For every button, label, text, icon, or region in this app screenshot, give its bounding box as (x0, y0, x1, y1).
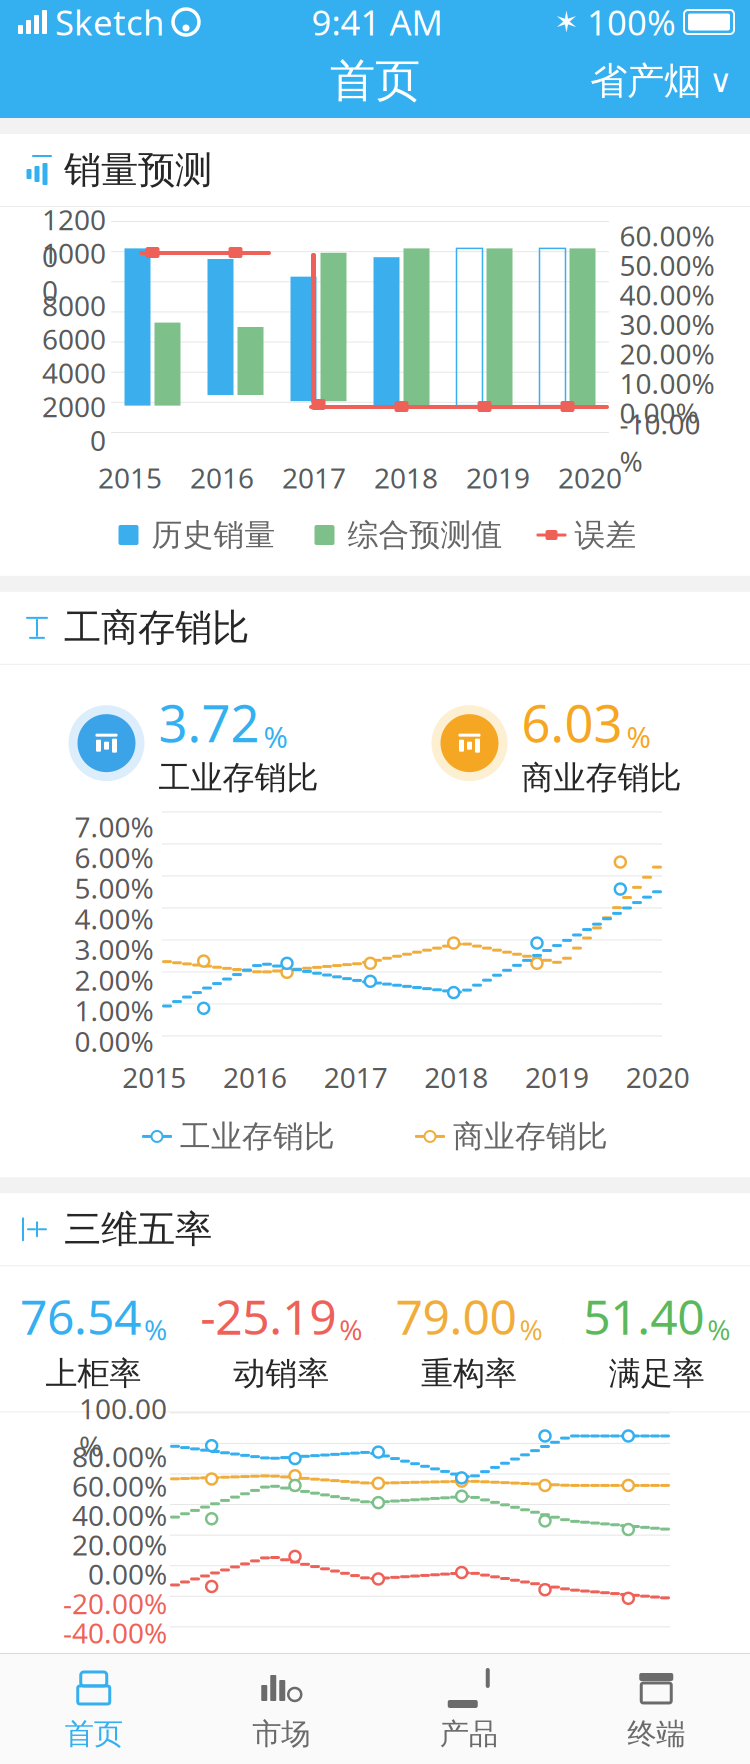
button[interactable]: 省产烟 (576, 50, 750, 112)
staticText: 2018 (432, 1649, 496, 1686)
staticText: 50.00% (619, 247, 714, 284)
staticText: 产品 (440, 1716, 498, 1752)
staticText: 30.00% (619, 306, 714, 343)
staticText: -25.19 (200, 1284, 336, 1348)
staticText: ∨ (709, 63, 732, 99)
staticText: 20.00% (72, 1526, 167, 1563)
staticText: 销量预测 (64, 147, 212, 193)
staticText: 100% (587, 0, 676, 45)
staticText: 5.00% (74, 869, 153, 907)
staticText: 历史销量 (151, 516, 275, 554)
staticText: 工商存销比 (64, 605, 249, 651)
button[interactable]: 终端 (562, 1654, 750, 1764)
staticText: 2019 (525, 1058, 589, 1096)
staticText: 10.00% (619, 365, 714, 402)
staticText: 动销率 (268, 1706, 361, 1744)
staticText: % (339, 1311, 362, 1348)
staticText: 2017 (324, 1058, 388, 1096)
staticText: 2019 (466, 459, 530, 496)
staticText: 76.54 (20, 1284, 141, 1348)
staticText: 2019 (531, 1649, 595, 1686)
staticText: 满足率 (586, 1706, 679, 1744)
staticText: 上柜率 (45, 1354, 141, 1393)
staticText: 12000 (42, 201, 106, 275)
staticText: 2015 (98, 459, 162, 496)
staticText: 商业存销比 (521, 758, 681, 797)
staticText: ✶ (554, 5, 579, 39)
staticText: 6.03 (521, 689, 622, 756)
staticText: 首页 (330, 53, 420, 109)
staticText: 51.40 (583, 1284, 704, 1348)
staticText: 工业存销比 (158, 758, 318, 797)
staticText: 2020 (558, 459, 622, 496)
staticText: 0 (90, 422, 106, 459)
staticText: % (626, 717, 650, 756)
staticText: 3.00% (74, 931, 153, 968)
staticText: 2016 (223, 1058, 287, 1096)
staticText: 2016 (190, 459, 254, 496)
staticText: 0.00% (88, 1555, 167, 1592)
staticText: 省产烟 (590, 58, 701, 104)
staticText: Sketch (55, 0, 164, 45)
staticText: 8000 (42, 287, 106, 324)
staticText: 终端 (627, 1716, 685, 1752)
staticText: 6000 (42, 320, 106, 358)
staticText: 2017 (282, 459, 346, 496)
staticText: 40.00% (72, 1497, 167, 1534)
staticText: 误差 (574, 516, 636, 554)
staticText: 上柜率 (109, 1706, 202, 1744)
staticText: 2015 (122, 1058, 186, 1096)
staticText: 10000 (42, 234, 106, 309)
staticText: 79.00 (395, 1284, 516, 1348)
staticText: 0.00% (619, 394, 698, 431)
staticText: -10.00% (619, 405, 700, 479)
staticText: 商业存销比 (453, 1118, 608, 1155)
staticText: 工业存销比 (180, 1118, 335, 1155)
staticText: 重构率 (427, 1706, 520, 1744)
staticText: 动销率 (233, 1354, 329, 1393)
staticText: % (707, 1311, 730, 1348)
staticText: % (263, 717, 287, 756)
button[interactable]: 首页 (0, 1654, 187, 1764)
staticText: 首页 (65, 1716, 123, 1752)
staticText: -40.00% (63, 1614, 167, 1651)
staticText: 2015 (135, 1649, 199, 1686)
staticText: 4000 (42, 354, 106, 391)
staticText: 100.00% (79, 1390, 167, 1464)
staticText: 0.00% (74, 1022, 153, 1060)
staticText: 市场 (252, 1716, 310, 1752)
staticText: 2016 (234, 1649, 298, 1686)
button[interactable]: 产品 (375, 1654, 562, 1764)
staticText: 2020 (626, 1058, 690, 1096)
staticText: 60.00% (619, 217, 714, 254)
staticText: 2000 (42, 388, 106, 425)
staticText: 4.00% (74, 900, 153, 937)
staticText: 7.00% (74, 808, 153, 845)
staticText: 6.00% (74, 839, 153, 876)
staticText: 9:41 AM (311, 0, 442, 45)
staticText: 60.00% (72, 1467, 167, 1504)
staticText: 重构率 (421, 1354, 517, 1393)
staticText: 1.00% (74, 992, 153, 1029)
staticText: 2.00% (74, 961, 153, 998)
staticText: 2020 (630, 1649, 694, 1686)
staticText: -20.00% (63, 1585, 167, 1622)
staticText: 满足率 (609, 1354, 705, 1393)
staticText: 40.00% (619, 276, 714, 313)
button[interactable]: 市场 (187, 1654, 375, 1764)
staticText: 3.72 (158, 689, 259, 756)
staticText: 综合预测值 (347, 516, 502, 554)
staticText: 2018 (374, 459, 438, 496)
staticText: 2018 (424, 1058, 488, 1096)
staticText: 三维五率 (64, 1206, 212, 1252)
staticText: % (519, 1311, 542, 1348)
staticText: % (144, 1311, 167, 1348)
staticText: 20.00% (619, 335, 714, 372)
staticText: 2017 (333, 1649, 397, 1686)
staticText: 80.00% (72, 1438, 167, 1475)
